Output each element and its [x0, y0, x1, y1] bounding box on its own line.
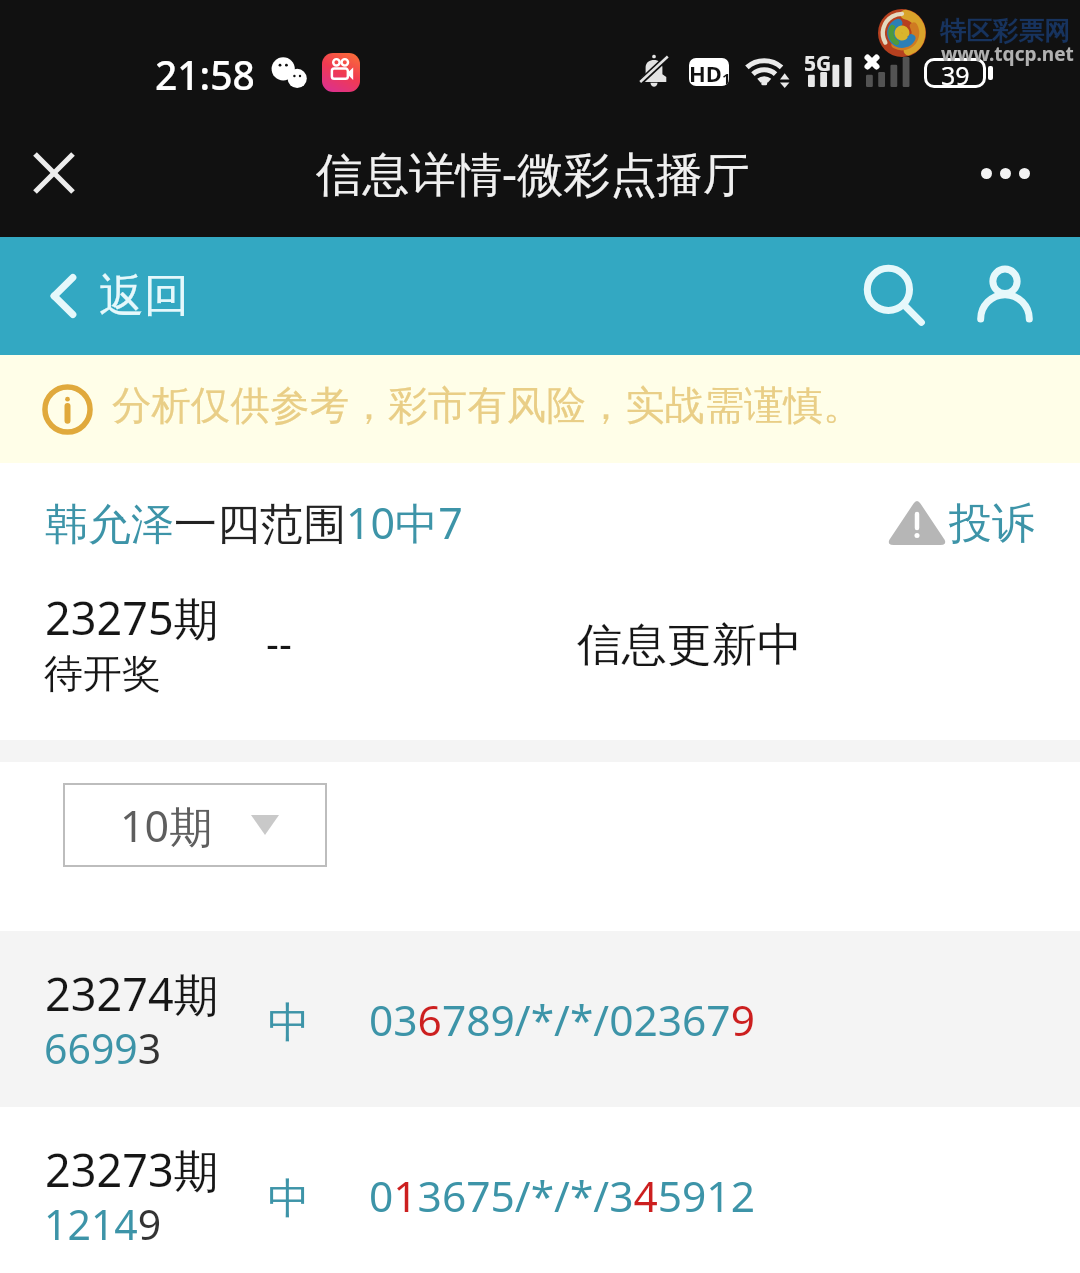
staticText: 10期 [120, 796, 213, 855]
staticText: 12149 [44, 1196, 162, 1252]
staticText: 5G [804, 49, 832, 78]
staticText: 39 [941, 58, 970, 88]
button[interactable]: 返回 [50, 261, 189, 331]
staticText: 投诉 [949, 497, 1035, 551]
staticText: www.tqcp.net [941, 41, 1074, 67]
staticText: 信息更新中 [577, 617, 802, 674]
staticText: 返回 [99, 268, 189, 325]
button[interactable]: 23274期 [0, 931, 1080, 1107]
staticText: 1 [722, 68, 729, 86]
staticText: 信息详情-微彩点播厅 [316, 141, 750, 205]
staticText: 特区彩票网 [940, 15, 1070, 48]
staticText: HD [689, 58, 722, 86]
button[interactable]: Close [18, 137, 90, 209]
button[interactable]: 23273期 [0, 1107, 1080, 1273]
staticText: 23273期 [45, 1139, 219, 1200]
staticText: 待开奖 [44, 649, 161, 698]
staticText: 66993 [44, 1020, 162, 1076]
staticText: 013675/*/*/345912 [369, 1167, 755, 1225]
staticText: -- [266, 615, 292, 669]
button[interactable]: Account [962, 253, 1048, 339]
staticText: 韩允泽一四范围10中7 [45, 493, 463, 552]
staticText: 23275期 [45, 587, 219, 648]
staticText: 分析仅供参考，彩市有风险，实战需谨慎。 [112, 381, 863, 431]
button[interactable]: Search [852, 253, 938, 339]
staticText: 21:58 [155, 48, 255, 101]
button[interactable]: 10期 [63, 783, 327, 867]
button[interactable]: More options [957, 137, 1053, 209]
staticText: 中 [268, 1173, 310, 1226]
staticText: 23274期 [45, 963, 219, 1024]
staticText: 036789/*/*/023679 [369, 991, 755, 1049]
staticText: 中 [268, 997, 310, 1050]
button[interactable]: 投诉 [885, 496, 1040, 552]
